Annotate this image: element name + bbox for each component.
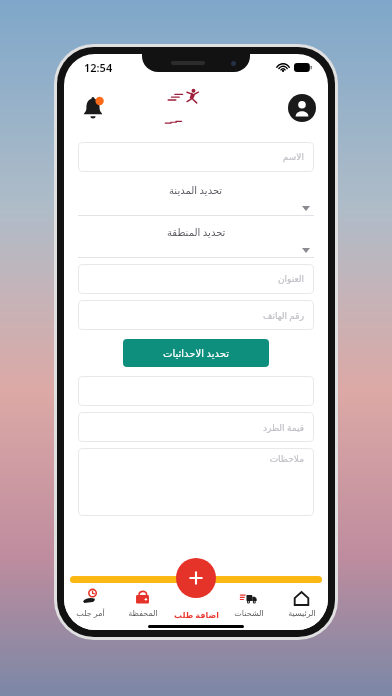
button[interactable]: الاسم	[78, 142, 314, 172]
staticText: اضافة طلب	[174, 609, 219, 620]
button[interactable]: الرئيسية	[275, 588, 328, 620]
staticText: تحديد المدينة	[169, 183, 223, 197]
button[interactable]: Profile	[288, 94, 316, 122]
staticText: الاسم	[282, 152, 304, 162]
button[interactable]: تحديد المنطقة	[78, 221, 314, 258]
staticText: قيمة الطرد	[263, 421, 304, 433]
button[interactable]: المحفظة	[116, 588, 169, 620]
button[interactable]: تحديد الاحداثيات	[123, 339, 269, 367]
staticText: المحفظة	[128, 609, 158, 618]
staticText: تحديد الاحداثيات	[163, 346, 230, 360]
staticText: 12:54	[84, 60, 113, 75]
button[interactable]: Notifications	[76, 91, 110, 125]
button[interactable]: أمر جلب	[64, 586, 116, 620]
button[interactable]: ملاحظات	[78, 448, 314, 516]
button[interactable]: تحديد المدينة	[78, 179, 314, 216]
button[interactable]: رقم الهاتف	[78, 300, 314, 330]
staticText: الشحنات	[234, 609, 264, 618]
button[interactable]: الشحنات	[222, 588, 275, 620]
staticText: العنوان	[277, 274, 304, 284]
staticText: تحديد المنطقة	[167, 225, 226, 239]
staticText: رقم الهاتف	[263, 309, 304, 321]
button[interactable]: العنوان	[78, 264, 314, 294]
button[interactable]	[78, 376, 314, 406]
staticText: أمر جلب	[76, 607, 105, 618]
button[interactable]: Add order	[176, 558, 216, 598]
staticText: ملاحظات	[269, 454, 304, 464]
button[interactable]: قيمة الطرد	[78, 412, 314, 442]
staticText: الرئيسية	[288, 609, 316, 618]
